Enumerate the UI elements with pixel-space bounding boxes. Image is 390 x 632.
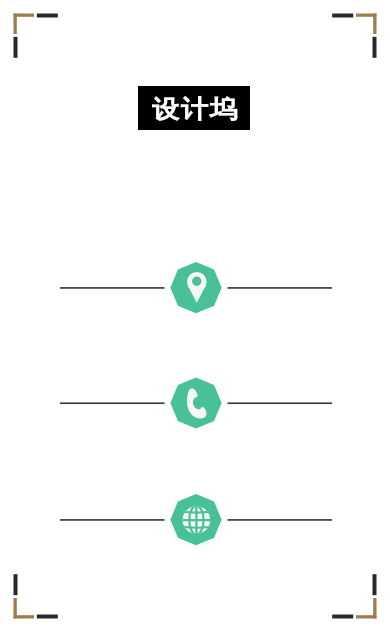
button[interactable]: 设计坞 (138, 86, 250, 130)
button[interactable]: Address (56, 262, 336, 314)
button[interactable]: Call (56, 377, 336, 429)
button[interactable]: Website (56, 494, 336, 546)
staticText: 设计坞 (152, 94, 239, 127)
